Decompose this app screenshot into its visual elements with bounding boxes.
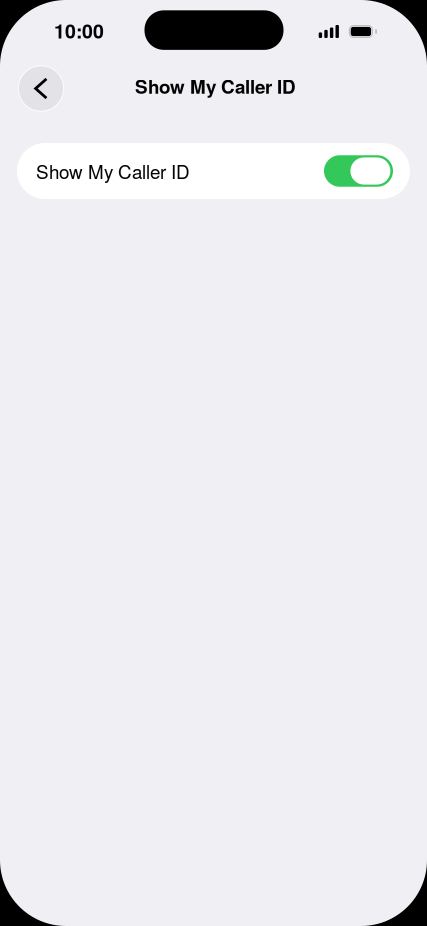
staticText: Show My Caller ID	[135, 72, 296, 99]
staticText: Show My Caller ID	[36, 157, 190, 184]
button[interactable]: Back	[17, 64, 65, 112]
staticText: 10:00	[54, 17, 104, 44]
button[interactable]: Show My Caller ID	[324, 155, 393, 187]
button[interactable]: Show My Caller ID	[17, 143, 410, 199]
